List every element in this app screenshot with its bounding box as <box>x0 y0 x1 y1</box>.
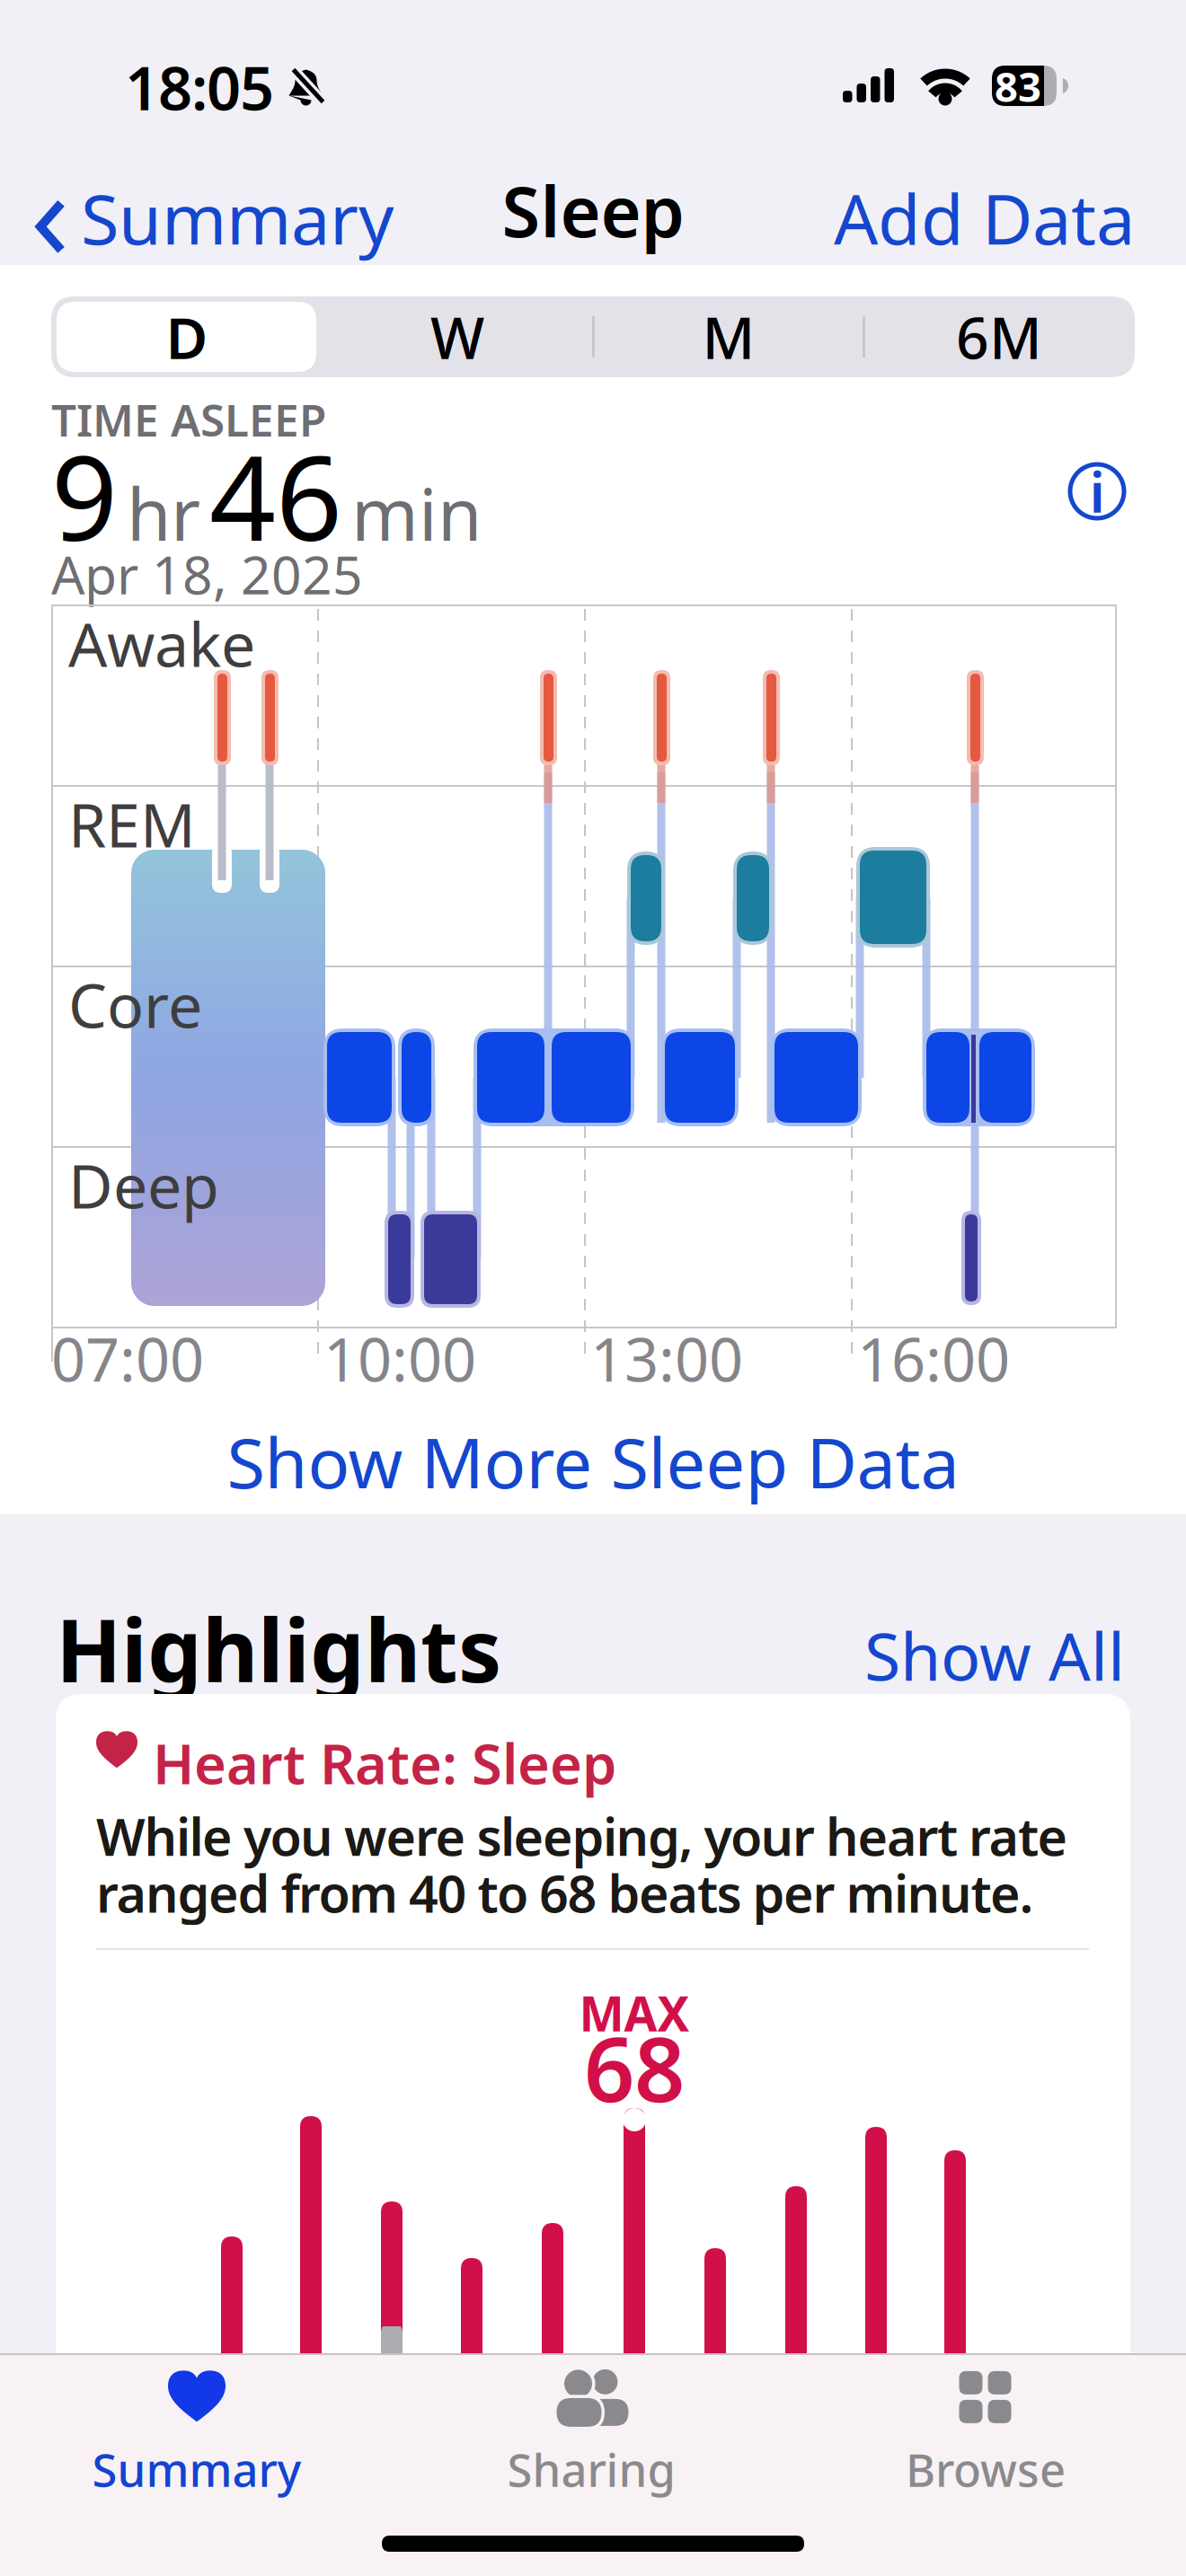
staticText: Add Data <box>834 172 1135 264</box>
staticText: 46 <box>209 419 342 573</box>
staticText: Summary <box>92 2439 301 2499</box>
staticText: Apr 18, 2025 <box>51 539 363 609</box>
staticText: 83 <box>995 59 1041 113</box>
button[interactable]: W <box>327 299 588 375</box>
staticText: 18:05 <box>125 47 274 127</box>
staticText: Sleep <box>502 164 684 256</box>
button[interactable]: Back to Summary <box>36 172 394 264</box>
button[interactable]: Browse <box>842 2358 1129 2510</box>
button[interactable]: 6M <box>869 299 1129 375</box>
button[interactable]: Sharing <box>447 2358 735 2510</box>
button[interactable]: Add Data <box>834 172 1135 264</box>
staticText: Show More Sleep Data <box>227 1415 959 1508</box>
button[interactable]: Heart Rate: Sleep highlight <box>0 0 1186 2576</box>
staticText: While you were sleeping, your heart rate… <box>96 1802 1068 1927</box>
staticText: Browse <box>906 2439 1066 2499</box>
staticText: Heart Rate: Sleep <box>153 1726 616 1799</box>
staticText: 13:00 <box>590 1319 743 1398</box>
staticText: TIME ASLEEP <box>51 390 326 449</box>
staticText: 68 <box>584 2009 685 2126</box>
staticText: Awake <box>68 603 255 684</box>
staticText: Show All <box>864 1611 1125 1699</box>
staticText: hr <box>127 465 200 561</box>
staticText: M <box>702 299 755 375</box>
staticText: 10:00 <box>323 1319 476 1398</box>
staticText: W <box>430 299 484 375</box>
button[interactable]: Show More Sleep Data <box>227 1415 959 1508</box>
button[interactable]: About Time Asleep <box>1065 459 1129 524</box>
staticText: 07:00 <box>51 1319 204 1398</box>
staticText: REM <box>68 783 196 864</box>
staticText: Deep <box>68 1144 219 1225</box>
staticText: min <box>351 465 482 561</box>
staticText: Highlights <box>56 1592 501 1706</box>
staticText: D <box>166 299 208 375</box>
staticText: Summary <box>81 172 394 264</box>
staticText: i <box>1089 455 1105 528</box>
button[interactable]: M <box>598 299 859 375</box>
staticText: MAX <box>579 1981 690 2045</box>
staticText: Core <box>68 964 202 1045</box>
button[interactable]: Show All <box>864 1611 1125 1699</box>
staticText: 16:00 <box>857 1319 1010 1398</box>
staticText: 6M <box>956 299 1042 375</box>
button[interactable]: Summary <box>53 2358 341 2510</box>
staticText: 9 <box>51 419 118 573</box>
staticText: Sharing <box>507 2439 675 2499</box>
button[interactable]: D <box>57 299 317 375</box>
